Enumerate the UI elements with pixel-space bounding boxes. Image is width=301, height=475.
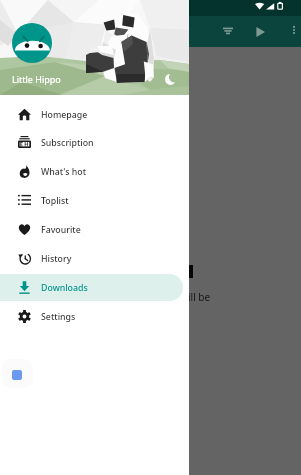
staticText: Downloads xyxy=(41,282,88,294)
staticText: Favourite xyxy=(41,224,81,236)
button[interactable]: Homepage xyxy=(0,101,183,128)
button[interactable]: What's hot xyxy=(0,158,183,185)
staticText: History xyxy=(41,253,72,265)
button[interactable]: Dark mode xyxy=(164,73,177,86)
staticText: Homepage xyxy=(41,109,88,121)
button[interactable]: History xyxy=(0,245,183,272)
staticText: Little Hippo xyxy=(12,73,61,85)
button[interactable]: Settings xyxy=(0,303,183,330)
button[interactable]: Play xyxy=(251,23,269,41)
button[interactable]: Keyboard xyxy=(2,359,33,388)
button[interactable]: Downloads xyxy=(0,274,183,301)
staticText: Subscription xyxy=(41,137,94,149)
button[interactable]: More options xyxy=(287,23,301,41)
button[interactable]: Toplist xyxy=(0,187,183,214)
button[interactable]: Profile xyxy=(12,23,52,63)
button[interactable]: Favourite xyxy=(0,216,183,243)
staticText: Toplist xyxy=(41,195,69,207)
staticText: What's hot xyxy=(41,166,87,178)
button[interactable]: Sort xyxy=(219,23,237,41)
staticText: ill be xyxy=(188,290,211,304)
staticText: Settings xyxy=(41,311,76,323)
button[interactable]: Subscription xyxy=(0,129,183,156)
